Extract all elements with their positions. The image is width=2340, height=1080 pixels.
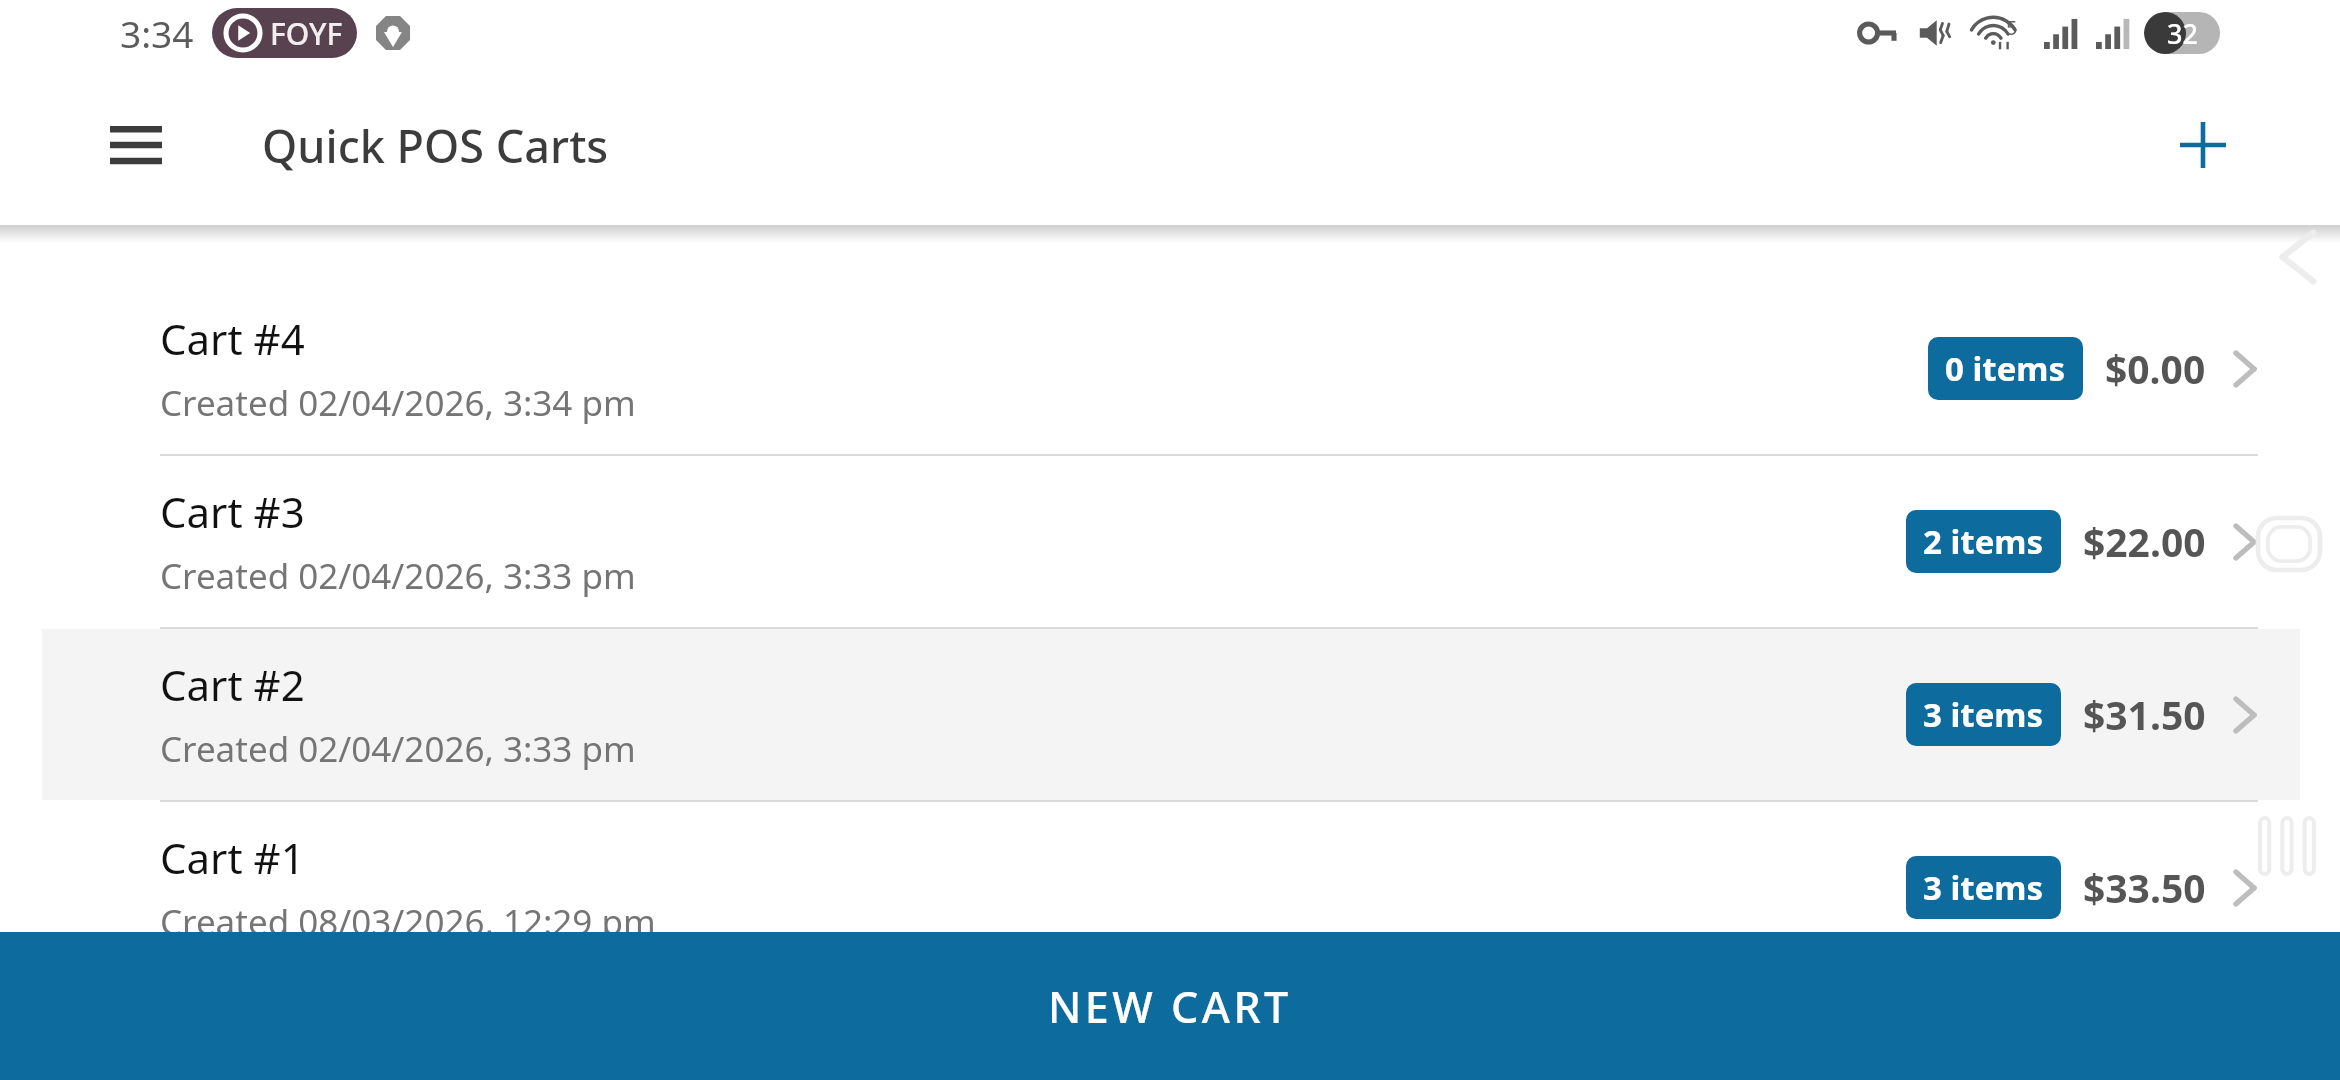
staticText: Created 02/04/2026, 3:33 pm	[160, 552, 636, 600]
staticText: 3 items	[1923, 692, 2044, 737]
button[interactable]: Cart #3	[0, 456, 2340, 627]
staticText: 0 items	[1945, 346, 2066, 391]
staticText: 5	[2006, 14, 2018, 41]
staticText: Cart #3	[160, 483, 305, 540]
staticText: $0.00	[2105, 342, 2206, 395]
staticText: Created 02/04/2026, 3:34 pm	[160, 379, 636, 427]
staticText: Cart #1	[160, 829, 305, 886]
staticText: $22.00	[2083, 515, 2206, 568]
staticText: $33.50	[2083, 861, 2206, 914]
staticText: Created 02/04/2026, 3:33 pm	[160, 725, 636, 773]
staticText: 3 items	[1923, 865, 2044, 910]
staticText: Cart #4	[160, 310, 305, 367]
button[interactable]: Cart #1	[0, 802, 2340, 973]
button[interactable]: Cart #2	[0, 629, 2340, 800]
button[interactable]: Open navigation menu	[100, 109, 172, 181]
staticText: FOYF	[270, 13, 343, 54]
button[interactable]: Cart #4	[0, 283, 2340, 454]
button[interactable]: NEW CART	[0, 932, 2340, 1080]
staticText: Created 08/03/2026, 12:29 pm	[160, 898, 656, 946]
staticText: 32	[2167, 15, 2198, 52]
button[interactable]: Add cart	[2164, 106, 2242, 184]
staticText: 3:34	[120, 8, 194, 58]
staticText: Cart #2	[160, 656, 305, 713]
staticText: Quick POS Carts	[262, 115, 609, 176]
staticText: $31.50	[2083, 688, 2206, 741]
staticText: 2 items	[1923, 519, 2044, 564]
staticText: NEW CART	[1048, 977, 1292, 1036]
